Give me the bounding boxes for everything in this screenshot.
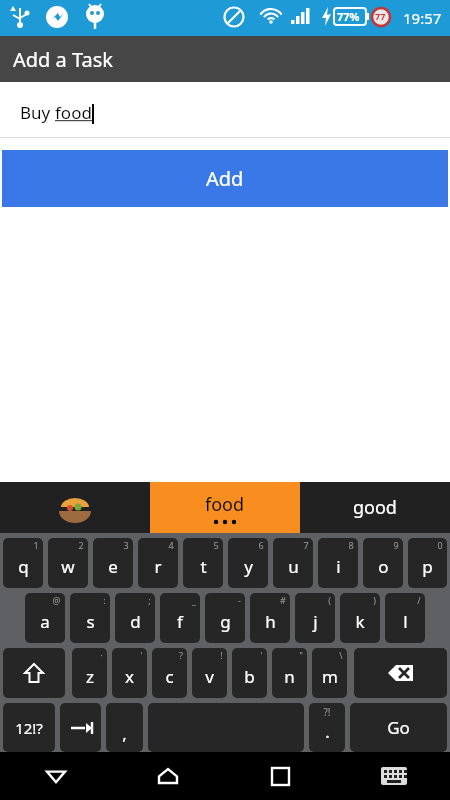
staticText: 4 xyxy=(168,539,174,551)
staticText: ? xyxy=(179,649,183,661)
button[interactable]: - xyxy=(205,593,245,643)
button[interactable]: good xyxy=(300,482,450,533)
button[interactable]: 3 xyxy=(93,538,133,588)
button[interactable]: " xyxy=(272,648,307,698)
button[interactable]: ? xyxy=(152,648,187,698)
staticText: ) xyxy=(373,594,376,606)
button[interactable]: 5 xyxy=(183,538,223,588)
button[interactable]: ; xyxy=(115,593,155,643)
button[interactable]: ' xyxy=(232,648,267,698)
button[interactable]: food xyxy=(150,482,300,533)
button[interactable]: : xyxy=(70,593,110,643)
staticText: 7 xyxy=(303,539,309,551)
staticText: 8 xyxy=(348,539,354,551)
staticText: k xyxy=(355,610,365,633)
staticText: p xyxy=(422,555,433,578)
button[interactable]: Shift xyxy=(3,648,65,698)
staticText: q xyxy=(18,555,29,578)
button[interactable]: Add xyxy=(2,150,448,207)
button[interactable]: Back xyxy=(0,752,112,800)
staticText: 3 xyxy=(123,539,129,551)
staticText: \ xyxy=(339,649,343,661)
button[interactable]: \ xyxy=(312,648,347,698)
staticText: _ xyxy=(192,594,196,606)
staticText: Add a Task xyxy=(13,46,113,73)
button[interactable] xyxy=(0,482,150,533)
staticText: good xyxy=(353,495,397,520)
staticText: , xyxy=(122,722,127,745)
staticText: l xyxy=(403,610,408,633)
staticText: 5 xyxy=(213,539,219,551)
staticText: i xyxy=(336,555,341,578)
button[interactable]: ( xyxy=(295,593,335,643)
staticText: ?! xyxy=(323,705,331,719)
staticText: - xyxy=(238,594,241,606)
staticText: ' xyxy=(140,649,143,661)
button[interactable]: 9 xyxy=(363,538,403,588)
button[interactable]: Buy xyxy=(0,82,450,137)
staticText: Buy xyxy=(20,101,55,124)
staticText: 12!? xyxy=(15,718,43,738)
staticText: y xyxy=(244,555,253,578)
button[interactable]: Tab xyxy=(60,703,101,752)
staticText: m xyxy=(322,665,338,688)
staticText: · xyxy=(100,649,103,661)
staticText: food xyxy=(205,492,245,517)
staticText: e xyxy=(108,555,118,578)
button[interactable]: / xyxy=(385,593,425,643)
button[interactable]: @ xyxy=(25,593,65,643)
button[interactable]: 6 xyxy=(228,538,268,588)
staticText: b xyxy=(244,665,255,688)
staticText: food xyxy=(55,101,92,124)
button[interactable]: # xyxy=(250,593,290,643)
button[interactable]: Switch keyboard xyxy=(337,752,450,800)
staticText: t xyxy=(200,555,207,578)
staticText: h xyxy=(265,610,276,633)
staticText: 77 xyxy=(375,10,386,22)
button[interactable]: ' xyxy=(112,648,147,698)
button[interactable]: 0 xyxy=(408,538,447,588)
staticText: w xyxy=(61,555,75,578)
button[interactable]: 12!? xyxy=(3,703,55,752)
staticText: / xyxy=(417,594,421,606)
button[interactable]: ?! xyxy=(309,703,345,752)
staticText: @ xyxy=(52,594,61,606)
button[interactable]: 7 xyxy=(273,538,313,588)
staticText: 0 xyxy=(437,539,443,551)
staticText: Add xyxy=(206,165,244,192)
staticText: 2 xyxy=(78,539,84,551)
staticText: " xyxy=(299,649,303,661)
staticText: # xyxy=(280,594,286,606)
staticText: a xyxy=(40,610,50,633)
button[interactable]: 8 xyxy=(318,538,358,588)
staticText: x xyxy=(125,665,134,688)
button[interactable]: 4 xyxy=(138,538,178,588)
staticText: o xyxy=(378,555,389,578)
button[interactable]: _ xyxy=(160,593,200,643)
staticText: ! xyxy=(220,649,223,661)
staticText: 1 xyxy=(33,539,39,551)
staticText: j xyxy=(313,610,318,633)
button[interactable]: · xyxy=(72,648,107,698)
staticText: ' xyxy=(260,649,263,661)
staticText: c xyxy=(165,665,174,688)
staticText: v xyxy=(205,665,214,688)
staticText: 77% xyxy=(337,9,360,24)
staticText: ; xyxy=(148,594,151,606)
button[interactable]: 1 xyxy=(3,538,43,588)
button[interactable]: , xyxy=(106,703,143,752)
button[interactable]: Backspace xyxy=(354,648,447,698)
staticText: d xyxy=(130,610,141,633)
button[interactable]: Home xyxy=(112,752,224,800)
button[interactable]: 2 xyxy=(48,538,88,588)
staticText: s xyxy=(86,610,95,633)
button[interactable]: Go xyxy=(350,703,447,752)
button[interactable]: ! xyxy=(192,648,227,698)
staticText: r xyxy=(154,555,162,578)
staticText: Go xyxy=(387,716,410,739)
button[interactable]: Recents xyxy=(224,752,337,800)
button[interactable]: ) xyxy=(340,593,380,643)
staticText: . xyxy=(325,720,330,743)
staticText: 9 xyxy=(393,539,399,551)
